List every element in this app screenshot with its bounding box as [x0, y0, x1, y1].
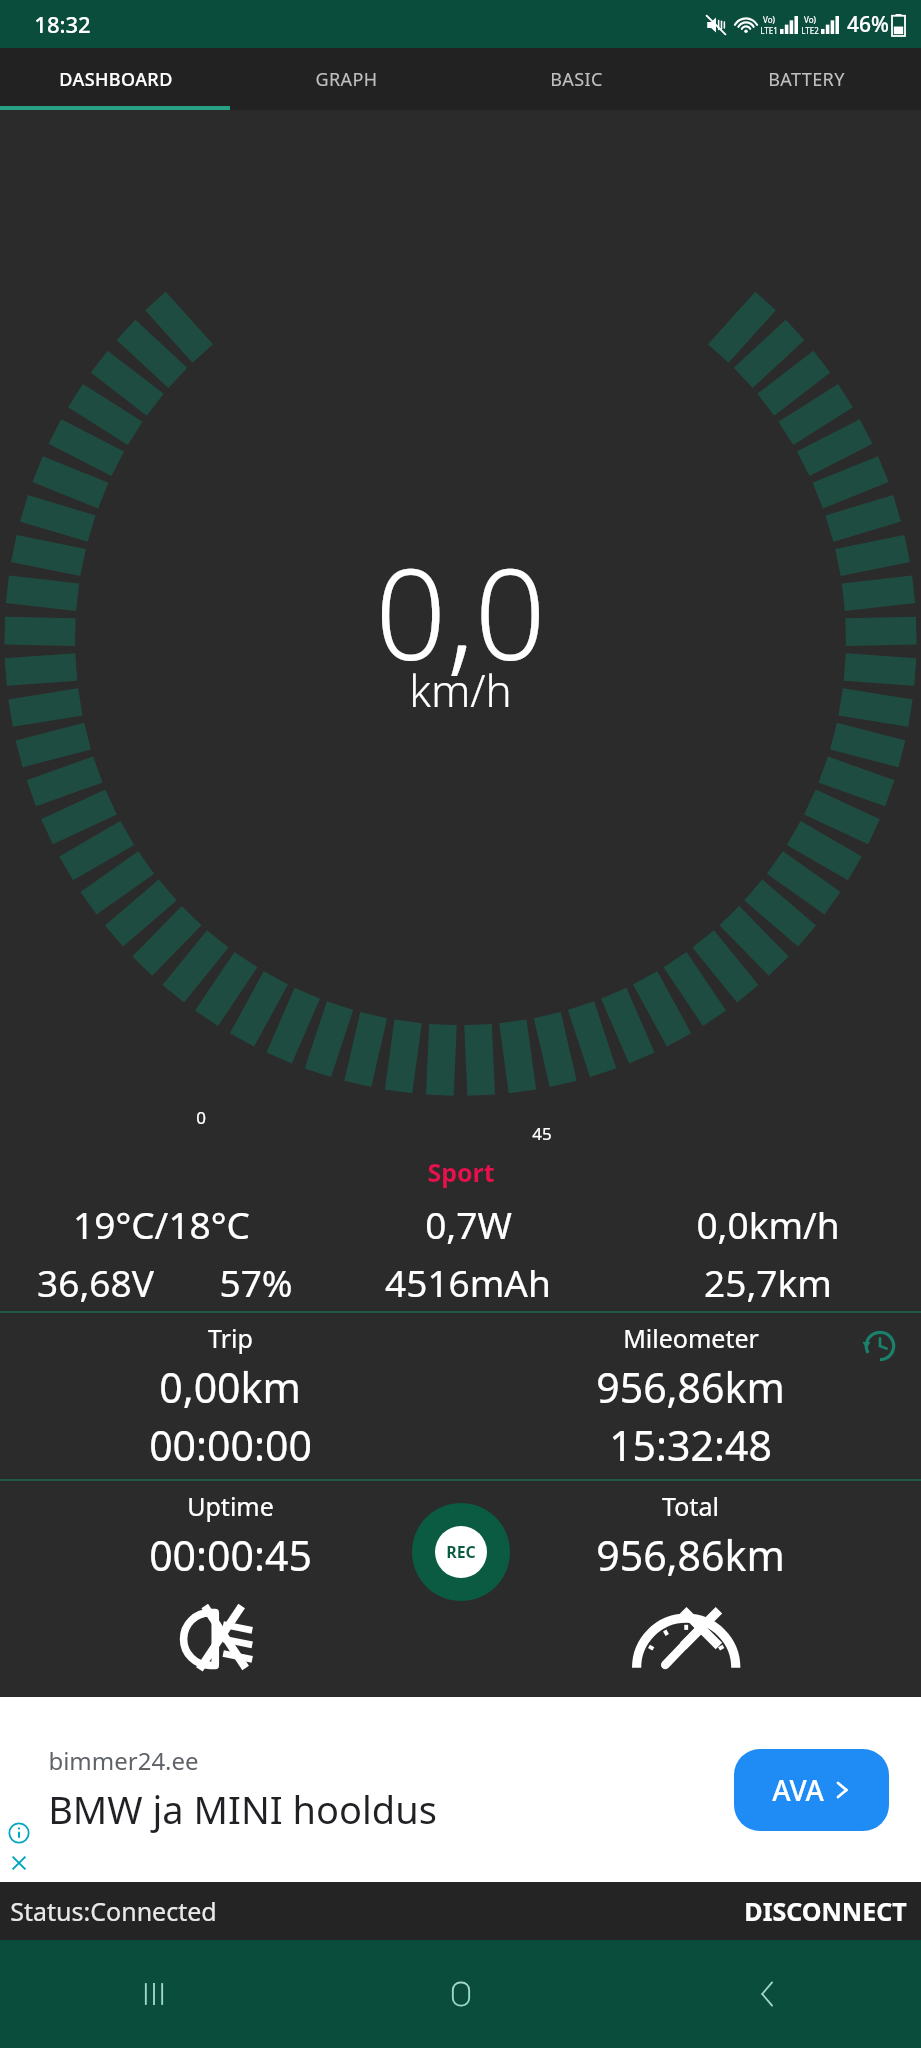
- button[interactable]: BASIC: [461, 48, 691, 110]
- button[interactable]: Close ad: [4, 1848, 34, 1878]
- staticText: Mileometer: [623, 1321, 759, 1355]
- staticText: Sport: [427, 1155, 495, 1189]
- button[interactable]: Ad info: [4, 1818, 34, 1848]
- staticText: 45: [532, 1122, 552, 1145]
- staticText: 956,86km: [596, 1359, 785, 1415]
- staticText: Total: [662, 1489, 719, 1523]
- staticText: AVA: [772, 1771, 824, 1809]
- staticText: Status:Connected: [10, 1894, 217, 1928]
- staticText: BATTERY: [768, 67, 845, 92]
- staticText: Uptime: [187, 1489, 274, 1523]
- staticText: 00:00:00: [149, 1417, 312, 1473]
- button[interactable]: Uptime: [0, 1489, 460, 1583]
- button[interactable]: bimmer24.ee: [0, 1697, 921, 1882]
- button[interactable]: History: [857, 1323, 903, 1369]
- button[interactable]: Back: [614, 1940, 921, 2048]
- button[interactable]: AVA: [734, 1749, 889, 1831]
- staticText: Trip: [208, 1321, 253, 1355]
- staticText: 956,86km: [596, 1527, 785, 1583]
- staticText: GRAPH: [315, 67, 378, 92]
- staticText: bimmer24.ee: [48, 1744, 199, 1777]
- button[interactable]: Record: [412, 1503, 510, 1601]
- staticText: DASHBOARD: [59, 67, 173, 92]
- staticText: Vo): [804, 14, 816, 25]
- staticText: 0: [196, 1106, 206, 1129]
- button[interactable]: DISCONNECT: [730, 1882, 921, 1940]
- staticText: 57%: [219, 1257, 293, 1307]
- staticText: LTE2: [801, 25, 819, 36]
- button[interactable]: BATTERY: [691, 48, 921, 110]
- staticText: 0,7W: [425, 1199, 512, 1249]
- button[interactable]: Mileometer: [460, 1321, 921, 1473]
- staticText: 4516mAh: [385, 1257, 551, 1307]
- button[interactable]: Trip: [0, 1321, 460, 1473]
- button[interactable]: Home: [307, 1940, 614, 2048]
- staticText: 36,68V: [37, 1257, 154, 1307]
- staticText: BMW ja MINI hooldus: [48, 1783, 437, 1835]
- button[interactable]: Total: [460, 1489, 921, 1583]
- button[interactable]: Recent apps: [0, 1940, 307, 2048]
- staticText: 46%: [847, 10, 889, 39]
- staticText: 00:00:45: [149, 1527, 312, 1583]
- staticText: km/h: [409, 660, 512, 720]
- button[interactable]: GRAPH: [231, 48, 461, 110]
- staticText: 0,0km/h: [696, 1199, 840, 1249]
- staticText: 0,0: [375, 526, 546, 696]
- staticText: 18:32: [34, 9, 91, 39]
- staticText: 0,00km: [159, 1359, 301, 1415]
- staticText: 25,7km: [704, 1257, 832, 1307]
- staticText: LTE1: [760, 25, 778, 36]
- button[interactable]: Headlight off: [0, 1599, 460, 1679]
- button[interactable]: DASHBOARD: [0, 48, 231, 110]
- staticText: BASIC: [550, 67, 603, 92]
- staticText: 19°C/18°C: [73, 1199, 250, 1249]
- staticText: 15:32:48: [609, 1417, 772, 1473]
- staticText: DISCONNECT: [744, 1894, 907, 1928]
- staticText: Vo): [763, 14, 775, 25]
- staticText: REC: [446, 1541, 476, 1563]
- button[interactable]: Cruise control off: [460, 1599, 921, 1679]
